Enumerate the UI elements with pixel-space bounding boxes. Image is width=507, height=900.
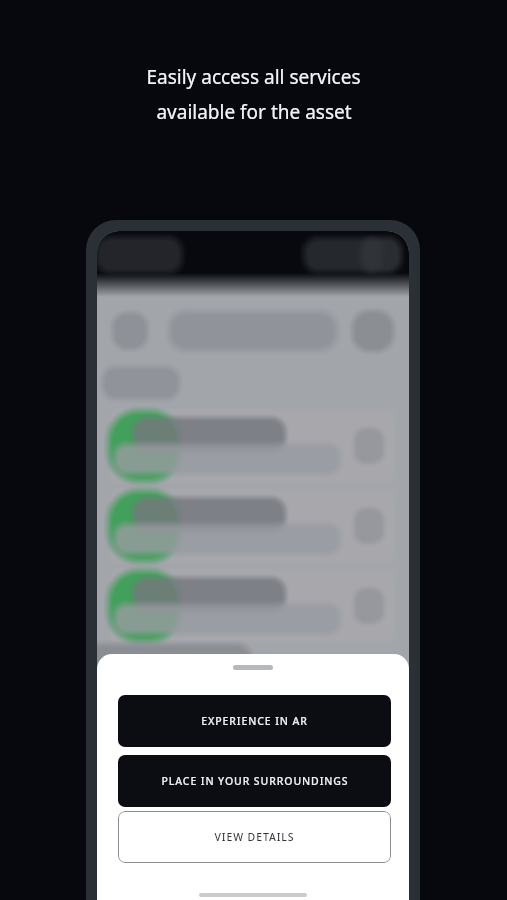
staticText: VIEW DETAILS [214,830,295,844]
staticText: EXPERIENCE IN AR [201,714,308,728]
staticText: PLACE IN YOUR SURROUNDINGS [161,774,349,788]
button[interactable]: EXPERIENCE IN AR [118,695,391,747]
staticText: Easily access all services [146,64,361,90]
button[interactable]: PLACE IN YOUR SURROUNDINGS [118,755,391,807]
button[interactable]: VIEW DETAILS [118,811,391,863]
staticText: available for the asset [156,99,352,125]
